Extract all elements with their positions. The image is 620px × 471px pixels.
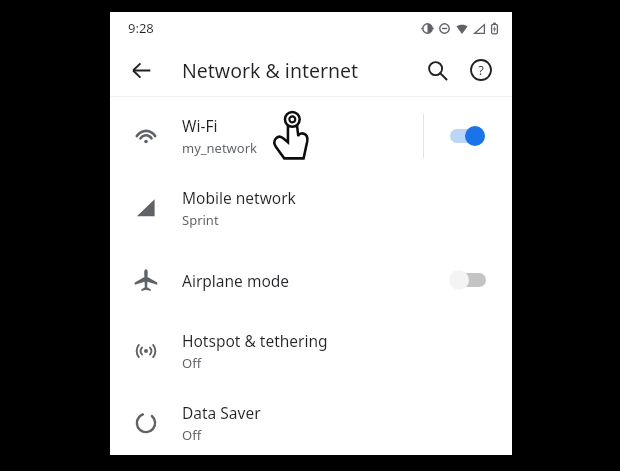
button[interactable]: Back <box>123 52 159 88</box>
button[interactable]: Hotspot & tethering <box>110 321 512 381</box>
staticText: 9:28 <box>128 19 154 37</box>
button[interactable]: Airplane mode off <box>448 268 488 292</box>
staticText: Data Saver <box>182 402 261 423</box>
staticText: ? <box>478 61 484 79</box>
button[interactable]: Airplane mode <box>110 250 512 310</box>
button[interactable]: Wi-Fi <box>110 106 512 166</box>
staticText: Sprint <box>182 211 219 229</box>
button[interactable]: Help <box>462 51 500 89</box>
staticText: Wi-Fi <box>182 115 218 136</box>
staticText: Network & internet <box>182 57 359 84</box>
button[interactable]: Data Saver <box>110 393 512 453</box>
staticText: Hotspot & tethering <box>182 330 328 351</box>
staticText: Mobile network <box>182 187 296 208</box>
button[interactable]: Mobile network <box>110 178 512 238</box>
staticText: Off <box>182 354 202 372</box>
button[interactable]: Wi-Fi on <box>448 124 488 148</box>
staticText: Off <box>182 426 202 444</box>
staticText: Airplane mode <box>182 270 290 291</box>
staticText: my_network <box>182 139 258 157</box>
button[interactable]: Search <box>418 51 456 89</box>
